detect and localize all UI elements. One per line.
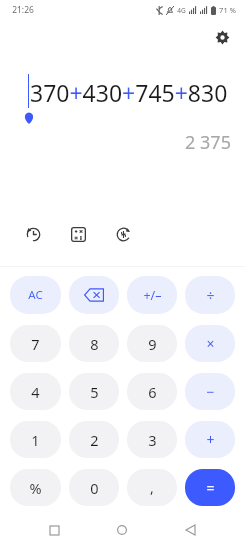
button[interactable]: Recent apps	[41, 517, 67, 543]
staticText: 370+430+745+830	[30, 77, 228, 108]
button[interactable]: 370+430+745+830	[30, 77, 228, 108]
staticText: 0	[90, 478, 99, 498]
button[interactable]: Backspace	[69, 276, 119, 314]
button[interactable]: %	[10, 469, 61, 506]
button[interactable]: 1	[10, 421, 61, 458]
button[interactable]: 8	[69, 325, 119, 362]
button[interactable]: Currency converter	[110, 221, 136, 247]
staticText: −	[206, 382, 215, 401]
staticText: 4	[31, 382, 40, 402]
staticText: 3	[148, 430, 157, 450]
button[interactable]: 0	[69, 469, 119, 506]
button[interactable]: ÷	[185, 276, 235, 314]
button[interactable]: 3	[127, 421, 177, 458]
staticText: +	[206, 430, 215, 449]
button[interactable]: ,	[127, 469, 177, 506]
staticText: 4G	[177, 6, 186, 15]
staticText: ÷	[206, 286, 215, 305]
staticText: +/–	[143, 287, 162, 304]
staticText: 7	[31, 334, 40, 354]
staticText: 1	[31, 430, 40, 450]
staticText: 2	[90, 430, 99, 450]
staticText: 9	[148, 334, 157, 354]
button[interactable]: −	[185, 373, 235, 410]
button[interactable]: 4	[10, 373, 61, 410]
staticText: =	[206, 478, 215, 497]
staticText: 71 %	[219, 5, 236, 15]
button[interactable]: Change sign	[127, 276, 177, 314]
button[interactable]: Settings	[208, 23, 236, 51]
staticText: 21:26	[12, 4, 34, 16]
staticText: AC	[28, 287, 43, 303]
button[interactable]: ×	[185, 325, 235, 362]
button[interactable]: History	[20, 221, 46, 247]
button[interactable]: +	[185, 421, 235, 458]
staticText: 5	[90, 382, 99, 402]
staticText: 8	[90, 334, 99, 354]
button[interactable]: 7	[10, 325, 61, 362]
button[interactable]: 5	[69, 373, 119, 410]
staticText: 6	[148, 382, 157, 402]
button[interactable]: Unit converter	[65, 221, 91, 247]
staticText: ,	[150, 478, 154, 497]
button[interactable]: 6	[127, 373, 177, 410]
button[interactable]: Back	[177, 517, 203, 543]
button[interactable]: 2	[69, 421, 119, 458]
button[interactable]: 9	[127, 325, 177, 362]
button[interactable]: =	[185, 469, 235, 506]
button[interactable]: AC	[10, 276, 61, 314]
staticText: ×	[206, 334, 215, 353]
staticText: %	[29, 478, 42, 498]
button[interactable]: Home	[109, 517, 135, 543]
staticText: 2 375	[185, 130, 231, 155]
